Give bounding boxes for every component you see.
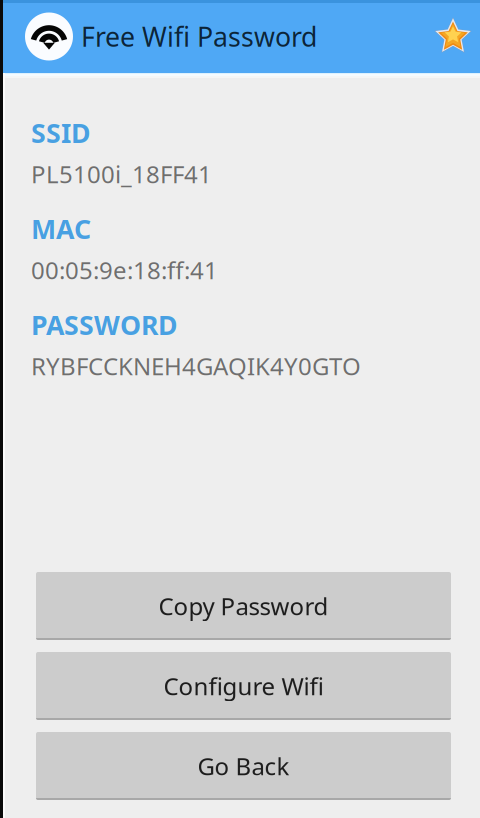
button[interactable]: Configure Wifi xyxy=(36,652,451,720)
staticText: SSID xyxy=(31,115,91,150)
button[interactable]: Copy Password xyxy=(36,572,451,640)
button[interactable]: Favourite this network xyxy=(431,14,475,58)
staticText: Go Back xyxy=(197,750,289,782)
staticText: 00:05:9e:18:ff:41 xyxy=(31,254,218,286)
button[interactable]: Go Back xyxy=(36,732,451,800)
staticText: MAC xyxy=(31,211,91,246)
staticText: PASSWORD xyxy=(31,307,178,342)
staticText: Copy Password xyxy=(158,590,328,622)
staticText: PL5100i_18FF41 xyxy=(31,158,212,190)
staticText: Configure Wifi xyxy=(163,670,323,702)
staticText: RYBFCCKNEH4GAQIK4Y0GTO xyxy=(31,350,361,382)
staticText: Free Wifi Password xyxy=(81,19,317,54)
